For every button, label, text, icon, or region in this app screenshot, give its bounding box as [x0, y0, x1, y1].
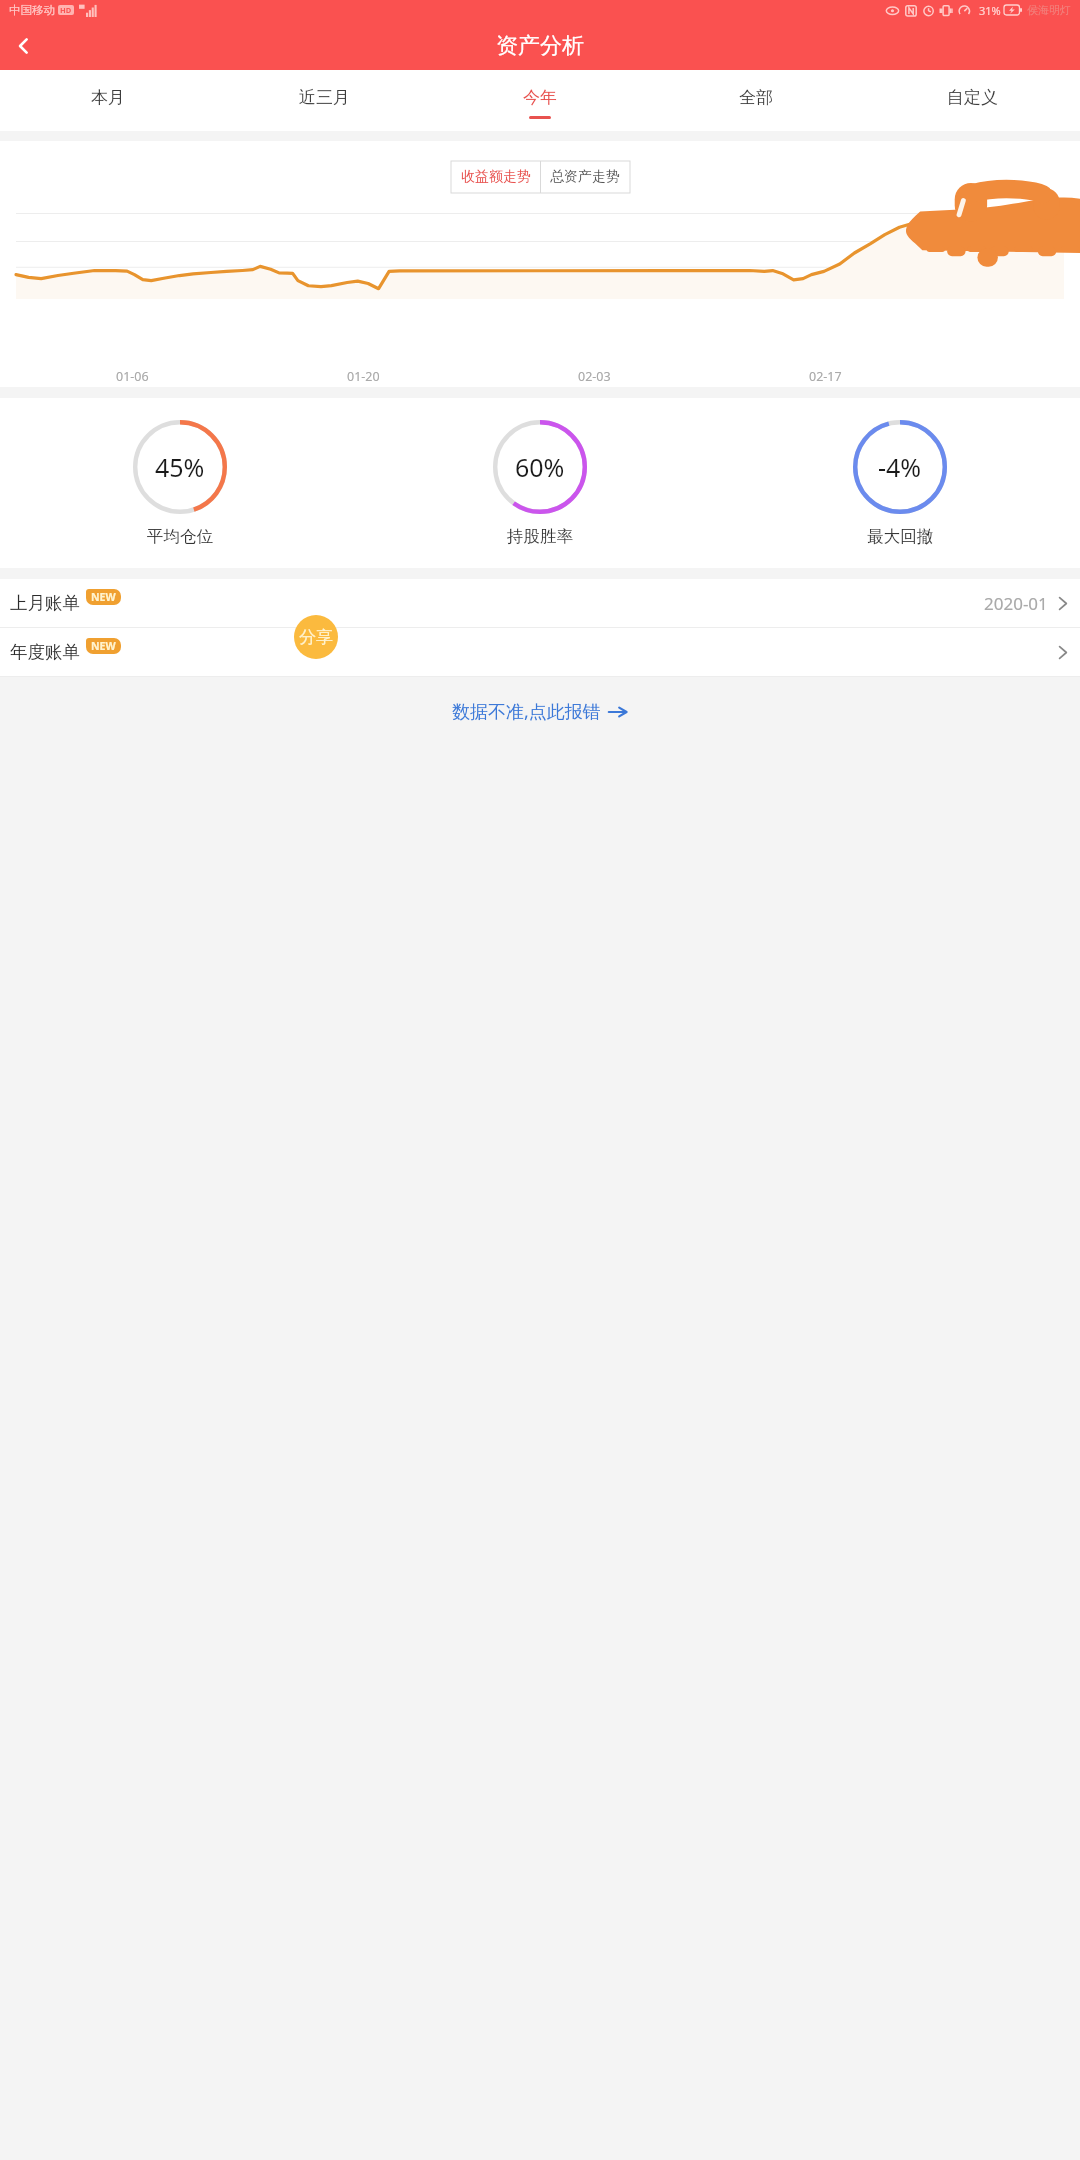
staticText: 01-06 — [116, 368, 149, 385]
button[interactable]: 近三月 — [216, 70, 432, 131]
staticText: -4% — [878, 450, 922, 484]
staticText: 平均仓位 — [147, 526, 213, 547]
button[interactable]: 数据不准,点此报错 — [452, 699, 628, 724]
button[interactable]: 收益额走势 — [451, 161, 540, 193]
staticText: 31% — [979, 3, 1001, 18]
staticText: 2020-01 — [984, 592, 1048, 615]
staticText: NEW — [91, 590, 116, 604]
button[interactable]: 本月 — [0, 70, 216, 131]
staticText: 近三月 — [299, 87, 350, 108]
staticText: 自定义 — [947, 87, 998, 108]
button[interactable]: 分享 — [294, 615, 338, 659]
staticText: 今年 — [523, 87, 557, 108]
staticText: 全部 — [739, 87, 773, 108]
staticText: 02-17 — [809, 368, 842, 385]
staticText: 中国移动 — [9, 3, 55, 17]
button[interactable]: 总资产走势 — [540, 161, 630, 193]
staticText: 数据不准,点此报错 — [452, 699, 601, 724]
button[interactable]: Back — [0, 22, 48, 70]
staticText: 45% — [155, 450, 205, 484]
button[interactable]: 全部 — [648, 70, 864, 131]
button[interactable]: 上月账单 — [0, 579, 1080, 627]
staticText: 01-20 — [347, 368, 380, 385]
staticText: 上月账单 — [10, 592, 80, 614]
button[interactable]: 年度账单 — [0, 628, 1080, 676]
staticText: 侯海明灯 — [1027, 3, 1071, 17]
staticText: 持股胜率 — [507, 526, 573, 547]
staticText: 资产分析 — [496, 32, 584, 60]
staticText: 年度账单 — [10, 641, 80, 663]
button[interactable]: 60% — [360, 419, 720, 547]
staticText: 收益额走势 — [461, 168, 531, 186]
staticText: 本月 — [91, 87, 125, 108]
button[interactable]: -4% — [720, 419, 1080, 547]
staticText: NEW — [91, 639, 116, 653]
button[interactable]: 今年 — [432, 70, 648, 131]
staticText: 最大回撤 — [867, 526, 933, 547]
button[interactable]: 45% — [0, 419, 360, 547]
staticText: 总资产走势 — [550, 168, 620, 186]
staticText: HD — [60, 5, 72, 15]
button[interactable]: 自定义 — [864, 70, 1080, 131]
staticText: 分享 — [299, 627, 333, 648]
staticText: 60% — [515, 450, 565, 484]
staticText: 02-03 — [578, 368, 611, 385]
